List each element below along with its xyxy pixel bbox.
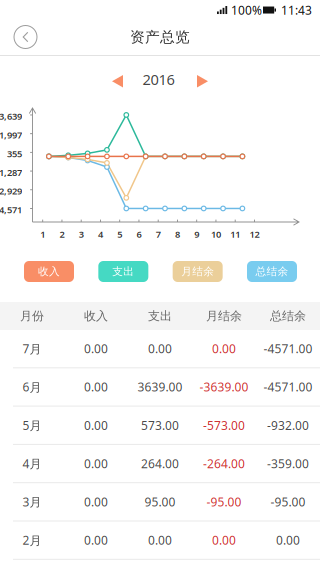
staticText: 0.00 — [276, 532, 300, 548]
staticText: 1 — [40, 228, 45, 240]
staticText: 3639.00 — [137, 379, 182, 395]
staticText: -95.00 — [206, 494, 241, 510]
staticText: -1,287 — [0, 166, 22, 178]
staticText: 月结余 — [206, 309, 242, 323]
staticText: 6月 — [22, 379, 41, 395]
staticText: 4 — [98, 228, 103, 240]
staticText: 总结余 — [270, 309, 306, 323]
staticText: 6 — [136, 228, 141, 240]
staticText: 收入 — [84, 309, 108, 323]
staticText: 11:43 — [281, 2, 312, 18]
staticText: 0.00 — [84, 341, 108, 357]
staticText: 5月 — [22, 417, 41, 433]
staticText: 95.00 — [144, 494, 175, 510]
staticText: 0.00 — [84, 456, 108, 471]
staticText: 2 — [59, 228, 64, 240]
button[interactable]: Back — [7, 18, 44, 55]
staticText: 7月 — [22, 341, 41, 357]
staticText: 355 — [7, 147, 22, 160]
staticText: 资产总览 — [130, 28, 190, 46]
staticText: -4571.00 — [263, 341, 312, 357]
staticText: 0.00 — [212, 341, 236, 357]
staticText: -4,571 — [0, 203, 22, 216]
staticText: 11 — [230, 228, 240, 240]
staticText: 2月 — [22, 532, 41, 548]
staticText: 收入 — [38, 265, 60, 278]
staticText: -3639.00 — [199, 379, 248, 395]
staticText: -359.00 — [267, 456, 309, 471]
staticText: -2,929 — [0, 185, 22, 197]
button[interactable]: Next year — [186, 66, 219, 96]
staticText: 573.00 — [141, 417, 179, 433]
staticText: 10 — [211, 228, 221, 240]
staticText: -95.00 — [270, 494, 305, 510]
staticText: 0.00 — [148, 341, 172, 357]
button[interactable]: 7月 — [0, 330, 320, 368]
button[interactable]: 月结余 — [173, 261, 223, 282]
button[interactable]: 3月 — [0, 483, 320, 521]
staticText: 264.00 — [141, 456, 179, 471]
button[interactable]: 收入 — [24, 261, 74, 282]
staticText: 支出 — [112, 265, 134, 278]
staticText: -4571.00 — [263, 379, 312, 395]
staticText: 3,639 — [0, 110, 22, 122]
staticText: 支出 — [148, 309, 172, 323]
button[interactable]: 4月 — [0, 445, 320, 483]
staticText: 3月 — [22, 494, 41, 510]
staticText: 2016 — [142, 69, 174, 89]
staticText: 0.00 — [84, 379, 108, 395]
staticText: 7 — [156, 228, 161, 240]
staticText: 4月 — [22, 456, 41, 471]
staticText: 1,997 — [0, 129, 22, 141]
staticText: 100% — [231, 2, 262, 18]
staticText: 3 — [79, 228, 84, 240]
staticText: -932.00 — [267, 417, 309, 433]
staticText: 0.00 — [148, 532, 172, 548]
staticText: 9 — [194, 228, 199, 240]
button[interactable]: 支出 — [98, 261, 148, 282]
staticText: 0.00 — [212, 532, 236, 548]
staticText: 月结余 — [181, 265, 214, 278]
staticText: 5 — [117, 228, 122, 240]
button[interactable]: Previous year — [101, 66, 134, 96]
staticText: 12 — [249, 228, 259, 240]
staticText: -573.00 — [203, 417, 245, 433]
staticText: 8 — [175, 228, 180, 240]
button[interactable]: 总结余 — [247, 261, 297, 282]
staticText: 总结余 — [255, 265, 288, 278]
staticText: 月份 — [20, 309, 44, 323]
button[interactable]: 2月 — [0, 521, 320, 560]
staticText: 0.00 — [84, 417, 108, 433]
staticText: 0.00 — [84, 532, 108, 548]
staticText: -264.00 — [203, 456, 245, 471]
staticText: 0.00 — [84, 494, 108, 510]
button[interactable]: 5月 — [0, 407, 320, 445]
button[interactable]: 6月 — [0, 368, 320, 407]
